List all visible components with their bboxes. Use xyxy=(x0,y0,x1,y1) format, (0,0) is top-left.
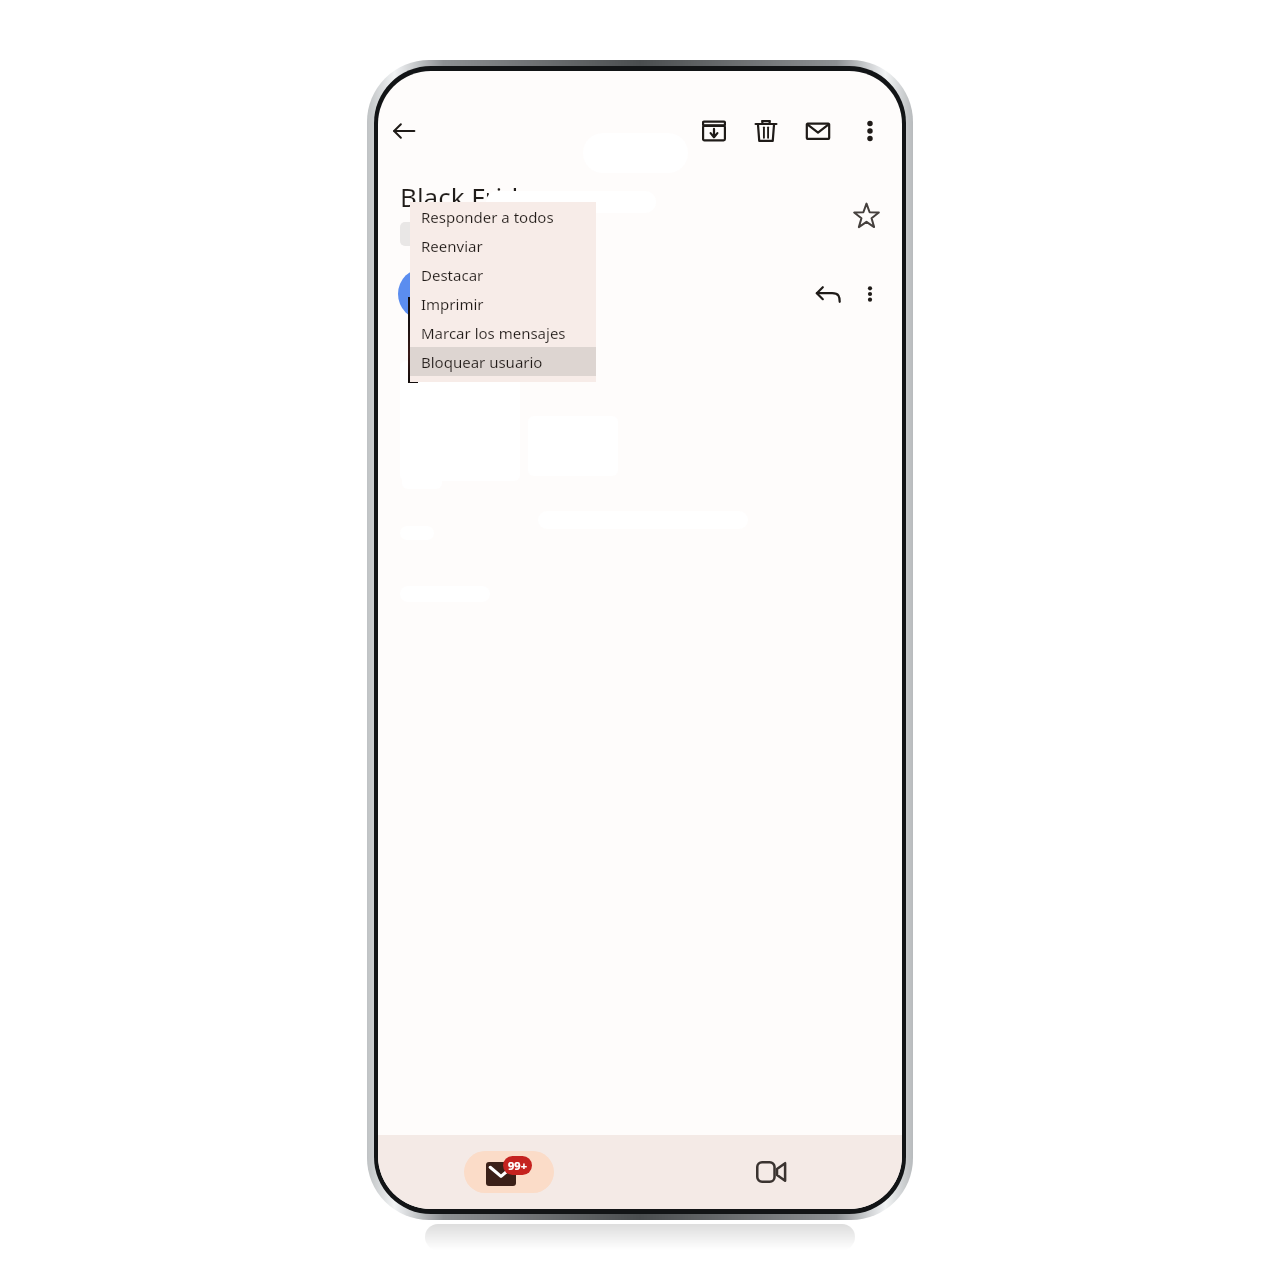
button[interactable]: More options xyxy=(844,105,896,157)
staticText: Destacar xyxy=(421,265,484,285)
staticText: Reenviar xyxy=(421,236,483,256)
button[interactable]: More options xyxy=(850,274,890,314)
button[interactable]: Marcar los mensajes como no leídos d.. xyxy=(410,318,596,347)
button[interactable]: Meet xyxy=(640,1144,902,1200)
button[interactable]: para mí xyxy=(466,292,546,314)
button[interactable]: Bloquear usuario xyxy=(410,347,596,376)
staticText: Responder a todos xyxy=(421,207,554,227)
button[interactable]: Mail, 99+ unread xyxy=(464,1151,554,1193)
button[interactable]: Back xyxy=(378,105,430,157)
button[interactable]: Mark as unread xyxy=(792,105,844,157)
button[interactable]: Imprimir xyxy=(410,289,596,318)
staticText: Imprimir xyxy=(421,294,484,314)
button[interactable]: Reply xyxy=(806,272,850,316)
staticText: Bloquear usuario xyxy=(421,352,543,372)
staticText: Black Friday xyxy=(400,179,560,214)
staticText: Marcar los mensajes como no leídos d.. xyxy=(421,323,590,343)
button[interactable]: Star xyxy=(844,193,888,237)
staticText: para mí xyxy=(466,292,524,314)
button[interactable]: Recibidos xyxy=(400,222,477,246)
button[interactable]: Destacar xyxy=(410,260,596,289)
button[interactable]: Archive xyxy=(688,105,740,157)
staticText: 99+ xyxy=(508,1158,527,1173)
staticText: P xyxy=(417,278,432,311)
staticText: Recibidos xyxy=(409,225,468,243)
button[interactable]: Reenviar xyxy=(410,231,596,260)
button[interactable]: Responder a todos xyxy=(410,202,596,231)
button[interactable]: Delete xyxy=(740,105,792,157)
button[interactable]: P xyxy=(398,268,450,320)
